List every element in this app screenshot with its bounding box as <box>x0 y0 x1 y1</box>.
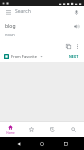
button[interactable]: Search <box>63 122 84 137</box>
button[interactable]: From Favorite <box>3 53 44 60</box>
button[interactable]: NEXT <box>67 53 81 60</box>
staticText: blog <box>5 23 72 30</box>
button[interactable]: Voice search <box>72 8 80 16</box>
button[interactable]: Copy <box>64 42 73 51</box>
staticText: NEXT <box>69 54 79 59</box>
button[interactable]: Back <box>14 139 24 149</box>
button[interactable]: Home <box>37 139 47 149</box>
staticText: From Favorite <box>11 54 38 59</box>
button[interactable]: Recent apps <box>61 139 71 149</box>
button[interactable]: Favorites <box>21 122 42 137</box>
button[interactable]: History <box>42 122 63 137</box>
button[interactable]: Open navigation menu <box>4 8 12 16</box>
staticText: noun <box>5 32 15 37</box>
staticText: Home <box>6 131 15 135</box>
button[interactable]: More options <box>73 42 82 51</box>
button[interactable]: Home <box>0 122 21 137</box>
button[interactable]: Listen to pronunciation <box>72 22 80 30</box>
staticText: Search <box>15 8 72 15</box>
